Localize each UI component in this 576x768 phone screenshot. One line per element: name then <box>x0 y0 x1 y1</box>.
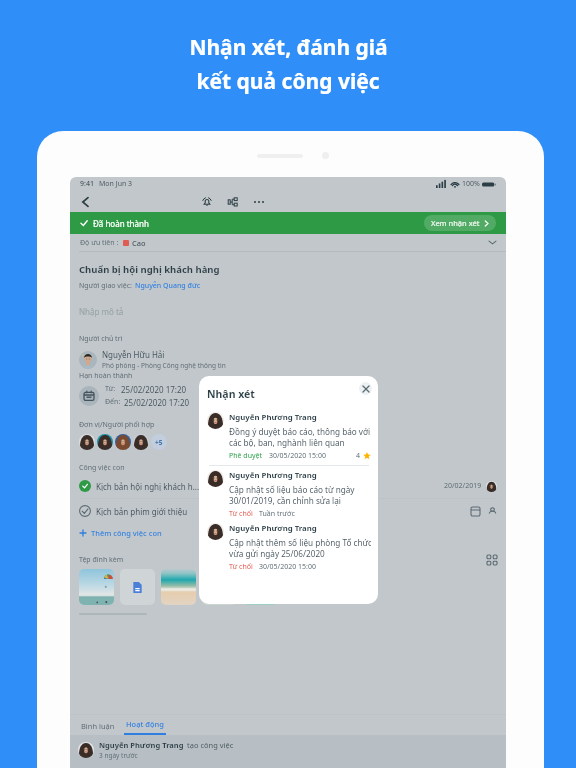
staticText: Công việc con <box>79 463 125 473</box>
staticText: 25/02/2020 17:20 <box>121 384 187 395</box>
staticText: 30/01/2019, cần chỉnh sửa lại <box>229 495 341 506</box>
staticText: kết quả công việc <box>196 67 380 96</box>
staticText: Nguyễn Phương Trang <box>229 412 317 423</box>
staticText: Phê duyệt <box>229 451 263 461</box>
button[interactable]: Bình luận <box>78 717 118 735</box>
staticText: Từ chối <box>229 509 253 519</box>
staticText: Độ ưu tiên : <box>80 238 119 248</box>
staticText: 3 ngày trước <box>99 751 138 760</box>
button[interactable]: Hoạt động <box>124 715 166 735</box>
staticText: Cao <box>132 238 146 248</box>
staticText: +5 <box>155 438 163 447</box>
staticText: Cập nhật số liệu báo cáo từ ngày <box>229 484 355 495</box>
button[interactable] <box>161 569 196 605</box>
staticText: 4 <box>356 451 361 461</box>
staticText: Mon Jun 3 <box>99 179 133 189</box>
button[interactable] <box>243 569 278 605</box>
staticText: Đồng ý duyệt báo cáo, thông báo với <box>229 426 371 437</box>
staticText: Đến: <box>105 397 121 407</box>
button[interactable] <box>120 569 155 605</box>
staticText: Cập nhật thêm số liệu phòng Tổ chức <box>229 537 371 548</box>
staticText: Nguyễn Phương Trang <box>99 740 184 750</box>
staticText: Tệp đính kèm <box>79 555 124 565</box>
staticText: 30/05/2020 15:00 <box>259 562 316 572</box>
staticText: Đơn vị/Người phối hợp <box>79 420 155 430</box>
staticText: 25/02/2020 17:20 <box>124 397 190 408</box>
staticText: Kịch bản hội nghị khách h... <box>96 481 200 492</box>
button[interactable]: Reminder <box>198 193 216 211</box>
button[interactable]: Xem nhận xét <box>424 215 496 231</box>
button[interactable]: Close <box>359 382 372 395</box>
staticText: Hạn hoàn thành <box>79 371 133 381</box>
staticText: Thêm công việc con <box>91 528 162 538</box>
button[interactable]: Back <box>77 193 95 211</box>
staticText: Phó phòng - Phòng Công nghệ thông tin <box>102 361 226 370</box>
staticText: Nguyễn Phương Trang <box>229 470 317 481</box>
staticText: Nhận xét <box>207 387 255 401</box>
staticText: 30/05/2020 15:00 <box>269 451 326 461</box>
staticText: Hoạt động <box>126 719 164 729</box>
staticText: Nguyễn Hữu Hải <box>102 349 165 360</box>
staticText: Nguyễn Quang đức <box>135 281 201 291</box>
button[interactable]: Thêm công việc con <box>79 528 162 538</box>
staticText: Chuẩn bị hội nghị khách hàng <box>79 263 220 276</box>
staticText: Người chủ trì <box>79 334 123 344</box>
button[interactable]: Subtasks <box>224 193 242 211</box>
staticText: Từ chối <box>229 562 253 572</box>
staticText: Nguyễn Phương Trang <box>229 523 317 534</box>
staticText: 100% <box>462 179 480 189</box>
button[interactable]: Kịch bản hội nghị khách h... <box>79 480 497 492</box>
staticText: Từ: <box>105 384 116 394</box>
staticText: Tuần trước <box>259 509 295 519</box>
staticText: 20/02/2019 <box>444 481 482 491</box>
staticText: Đã hoàn thành <box>93 218 149 229</box>
button[interactable]: Kịch bản phim giới thiệu <box>79 505 497 517</box>
staticText: Kịch bản phim giới thiệu <box>96 506 188 517</box>
button[interactable]: More <box>250 193 268 211</box>
button[interactable] <box>79 569 114 605</box>
staticText: 9:41 <box>80 179 94 189</box>
staticText: Nhận xét, đánh giá <box>189 33 388 62</box>
staticText: Xem nhận xét <box>431 218 480 228</box>
staticText: tạo công việc <box>187 740 234 750</box>
staticText: vừa gửi ngày 25/06/2020 <box>229 548 325 559</box>
staticText: Bình luận <box>81 721 115 731</box>
staticText: các bộ, ban, nghành liên quan <box>229 437 345 448</box>
staticText: Người giao việc: <box>79 281 132 291</box>
staticText: Nhập mô tả <box>79 306 124 317</box>
